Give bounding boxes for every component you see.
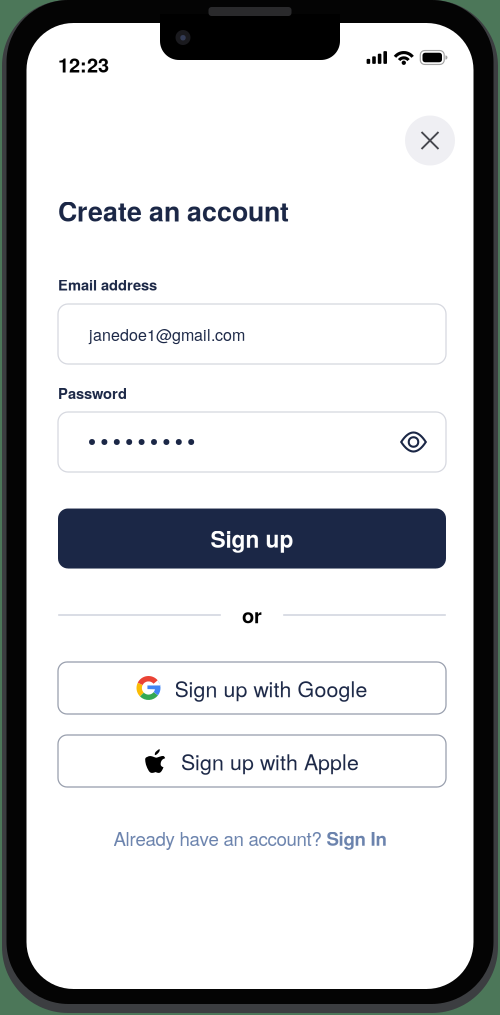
staticText: Sign In <box>326 825 386 851</box>
button[interactable]: Sign up with Google <box>58 662 446 714</box>
button[interactable]: Show password <box>400 432 427 452</box>
button[interactable]: Already have an account? <box>26 826 473 850</box>
staticText: 12:23 <box>58 50 109 79</box>
staticText: or <box>242 601 262 629</box>
button[interactable]: Close <box>405 115 455 165</box>
staticText: Create an account <box>58 191 289 230</box>
staticText: Already have an account? <box>113 825 326 851</box>
staticText: janedoe1@gmail.com <box>89 322 245 345</box>
staticText: Email address <box>58 274 157 295</box>
staticText: Sign up <box>210 522 293 555</box>
staticText: Sign up with Apple <box>181 746 359 776</box>
staticText: Sign up with Google <box>174 673 367 703</box>
button[interactable]: Sign up with Apple <box>58 735 446 787</box>
button[interactable]: Sign up <box>58 508 446 568</box>
staticText: Password <box>58 382 127 403</box>
